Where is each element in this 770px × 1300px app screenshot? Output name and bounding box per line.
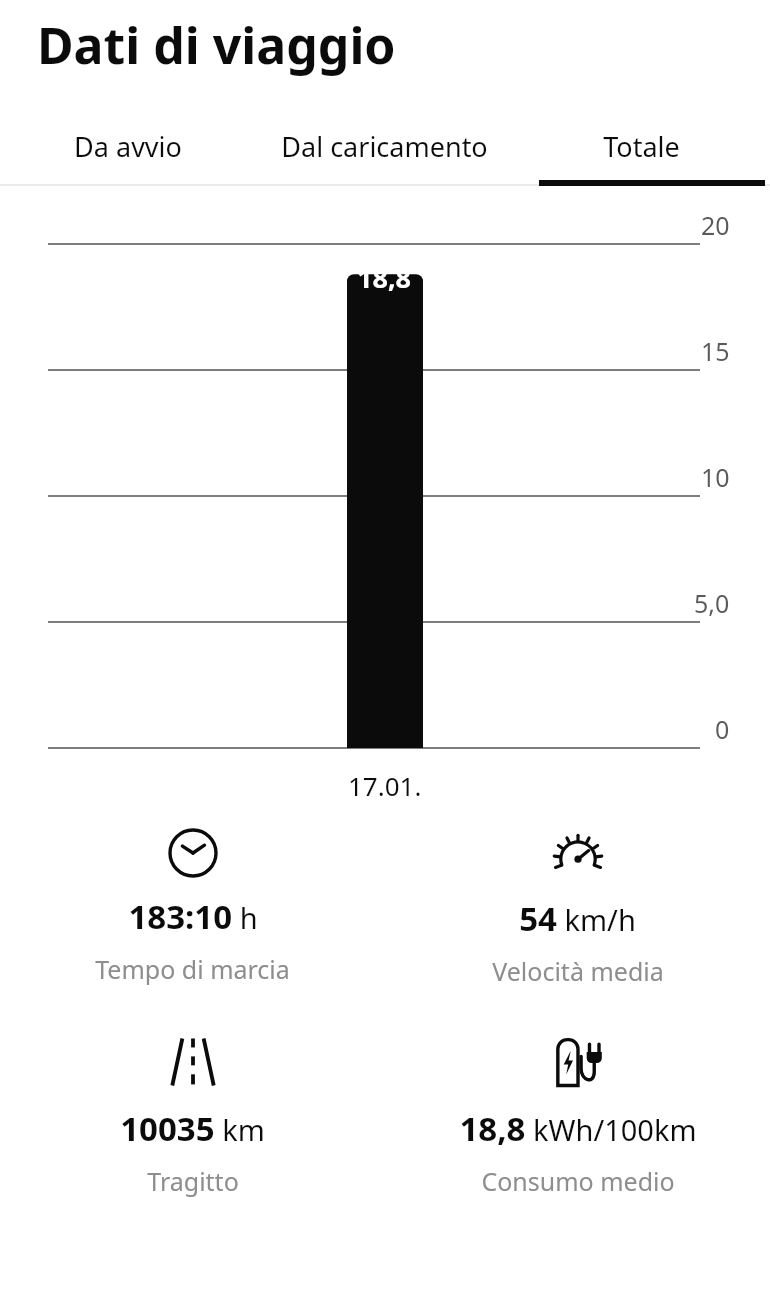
staticText: Totale — [603, 128, 680, 165]
staticText: Da avvio — [74, 128, 182, 165]
other: Average speed — [552, 828, 604, 880]
staticText: 10035 km — [120, 1106, 265, 1151]
staticText: 18,8 kWh/100km — [459, 1106, 697, 1151]
button[interactable]: Average consumption — [385, 1030, 770, 1202]
staticText: 15 — [701, 334, 730, 368]
staticText: 18,8 — [357, 259, 412, 296]
staticText: Consumo medio — [481, 1164, 675, 1198]
button[interactable]: Dal caricamento — [256, 114, 513, 178]
button[interactable]: Distance — [0, 1030, 385, 1202]
other: Driving time — [168, 828, 218, 878]
staticText: 20 — [701, 208, 730, 242]
staticText: 17.01. — [348, 768, 422, 803]
other: Average consumption — [550, 1034, 606, 1090]
button[interactable]: Driving time — [0, 824, 385, 990]
staticText: 54 km/h — [519, 896, 636, 941]
button[interactable]: Totale — [513, 114, 770, 178]
staticText: Dal caricamento — [281, 128, 488, 165]
staticText: 183:10 h — [128, 894, 258, 939]
button[interactable]: Average speed — [385, 824, 770, 992]
staticText: Velocità media — [492, 954, 664, 988]
staticText: Dati di viaggio — [37, 11, 396, 79]
staticText: Tragitto — [147, 1164, 239, 1198]
staticText: 0 — [715, 712, 730, 746]
staticText: 5,0 — [694, 586, 730, 620]
button[interactable]: Da avvio — [0, 114, 256, 178]
staticText: Tempo di marcia — [95, 952, 290, 986]
other: Distance — [165, 1034, 221, 1090]
staticText: 10 — [701, 460, 730, 494]
